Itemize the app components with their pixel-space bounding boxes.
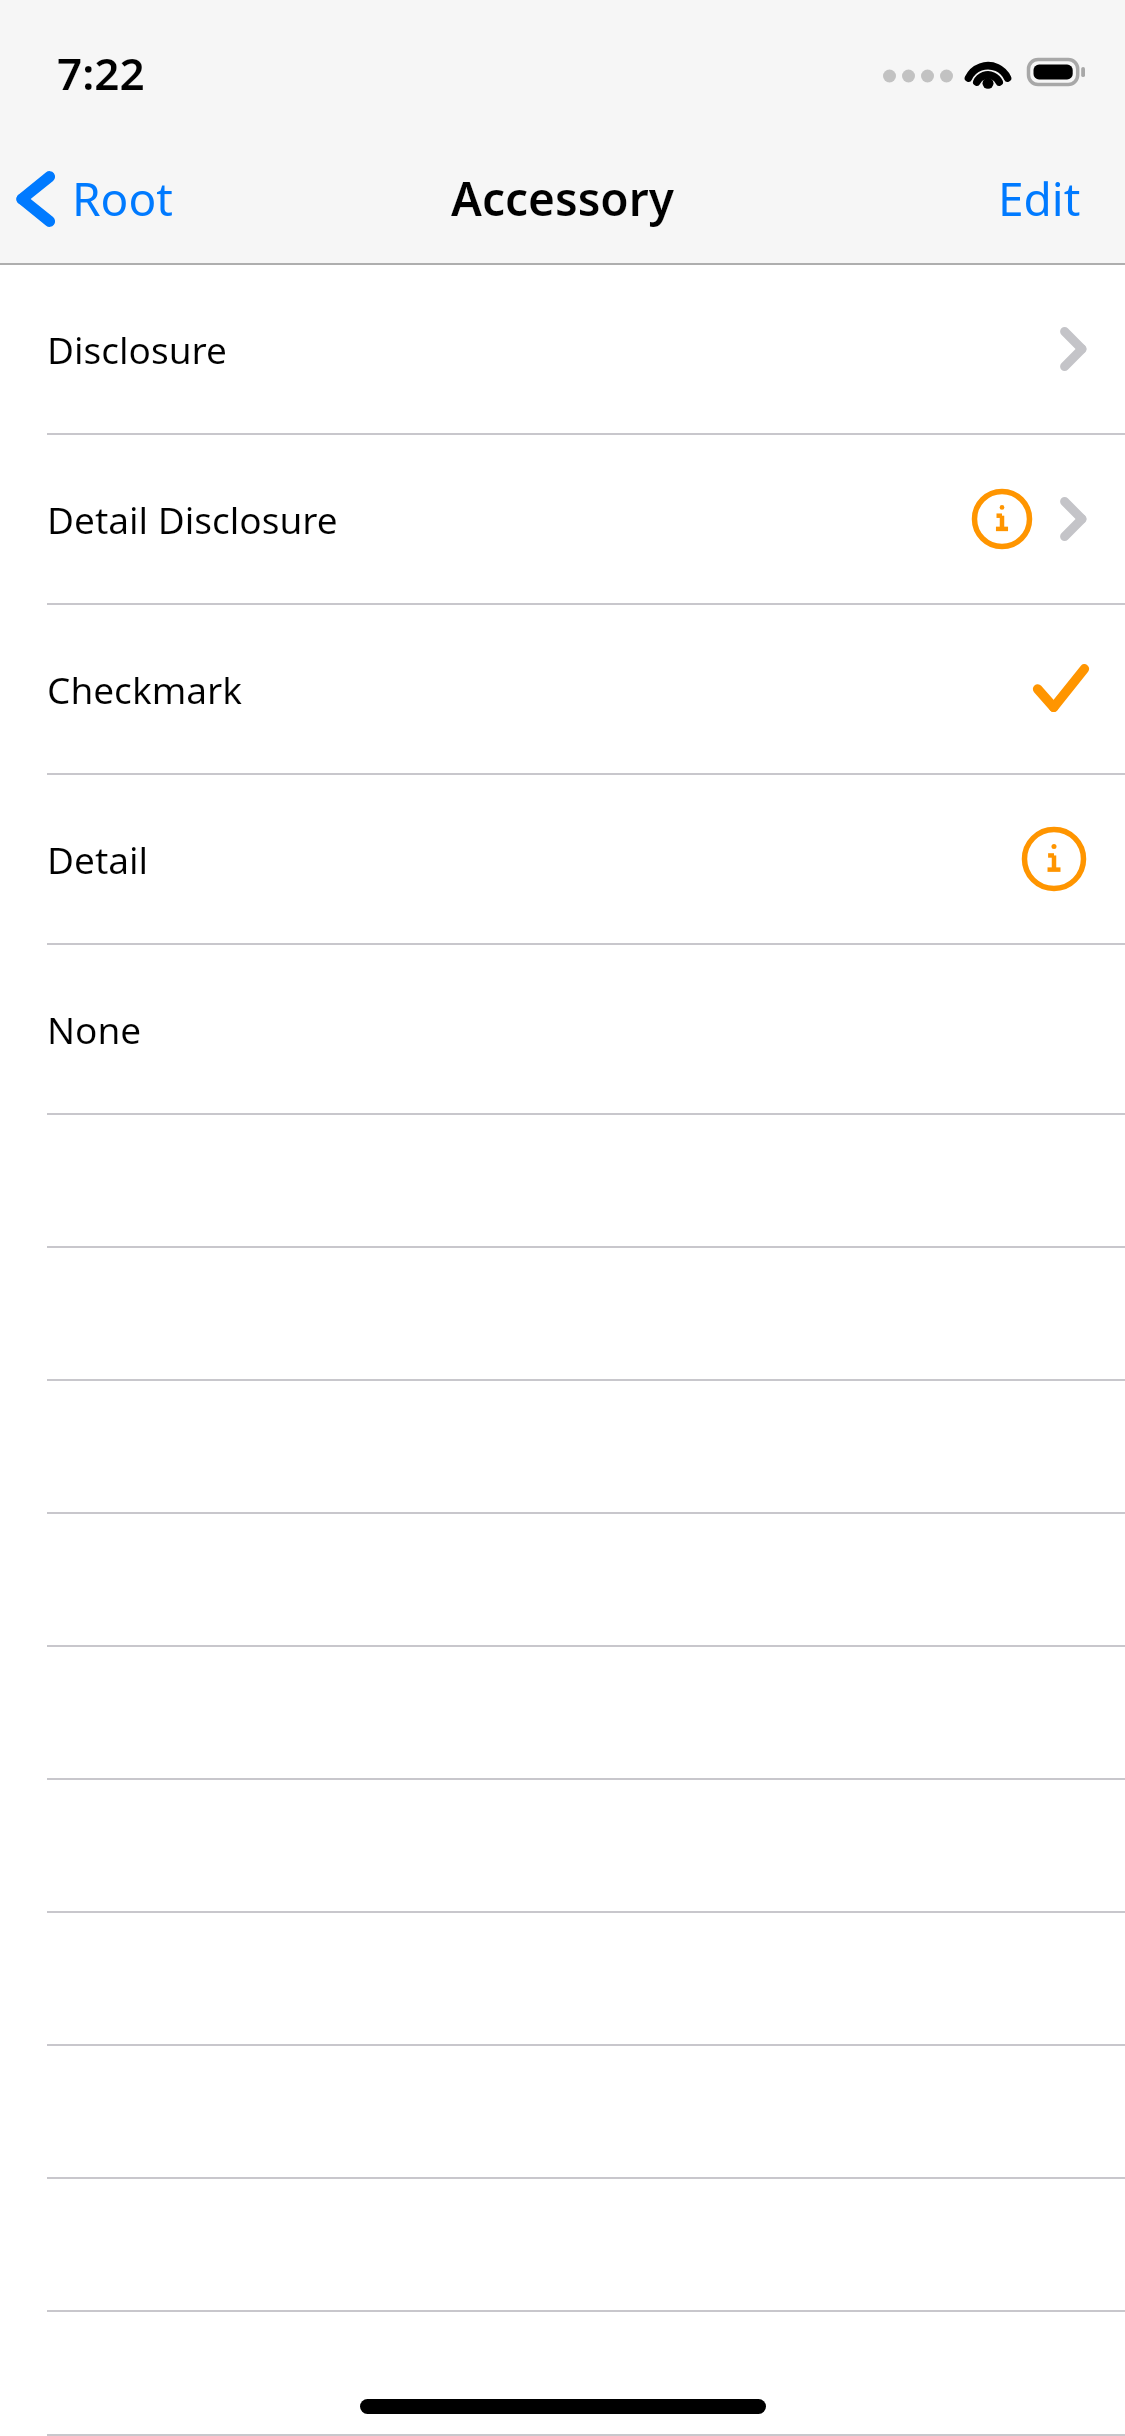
button[interactable]: Edit	[958, 151, 1125, 246]
button[interactable]: None	[0, 945, 1125, 1115]
button[interactable]: Detail	[0, 775, 1125, 945]
staticText: Checkmark	[47, 664, 243, 714]
other: Show detail	[1059, 326, 1087, 372]
staticText: Disclosure	[47, 324, 227, 374]
other: Checked	[1035, 665, 1087, 713]
staticText: 7:22	[57, 43, 145, 103]
staticText: Detail	[47, 834, 149, 884]
other: Show detail	[1059, 496, 1087, 542]
button[interactable]: Detail Disclosure	[0, 435, 1125, 605]
other: More info	[1021, 826, 1087, 892]
button[interactable]: Disclosure	[0, 265, 1125, 435]
button[interactable]: Root	[0, 157, 197, 240]
staticText: Detail Disclosure	[47, 494, 338, 544]
staticText: Edit	[998, 167, 1081, 230]
staticText: Accessory	[451, 167, 674, 230]
staticText: None	[47, 1004, 142, 1054]
staticText: Root	[72, 167, 173, 230]
button[interactable]: Checkmark	[0, 605, 1125, 775]
other: More info	[971, 488, 1033, 550]
